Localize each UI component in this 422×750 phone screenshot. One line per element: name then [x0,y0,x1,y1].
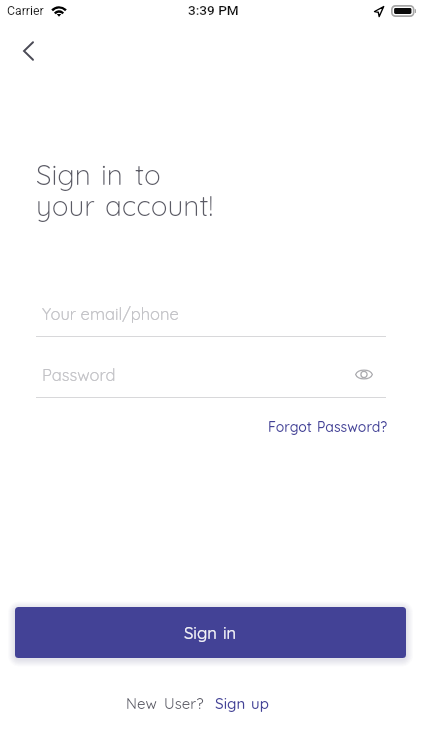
staticText: your [36,188,95,223]
staticText: to [135,157,161,192]
staticText: Sign [215,694,246,713]
staticText: User? [164,694,204,713]
button[interactable]: Back [6,29,50,73]
staticText: in [223,622,237,643]
button[interactable]: Sign [215,694,269,713]
staticText: in [101,157,123,192]
staticText: Sign [184,622,217,643]
staticText: New [126,694,157,713]
staticText: Carrier [7,4,44,18]
button[interactable]: Your email/phone [36,300,386,337]
staticText: 3:39 PM [188,2,239,18]
staticText: Forgot [268,418,312,436]
staticText: Sign [36,157,91,192]
staticText: Password [42,364,116,385]
staticText: Password? [317,418,388,436]
staticText: account! [105,188,214,223]
button[interactable]: Sign [15,607,406,658]
staticText: up [251,694,269,713]
button[interactable]: Show password [348,358,380,390]
staticText: Your email/phone [42,303,179,324]
button[interactable]: Password [36,361,386,398]
button[interactable]: Forgot [260,410,388,441]
